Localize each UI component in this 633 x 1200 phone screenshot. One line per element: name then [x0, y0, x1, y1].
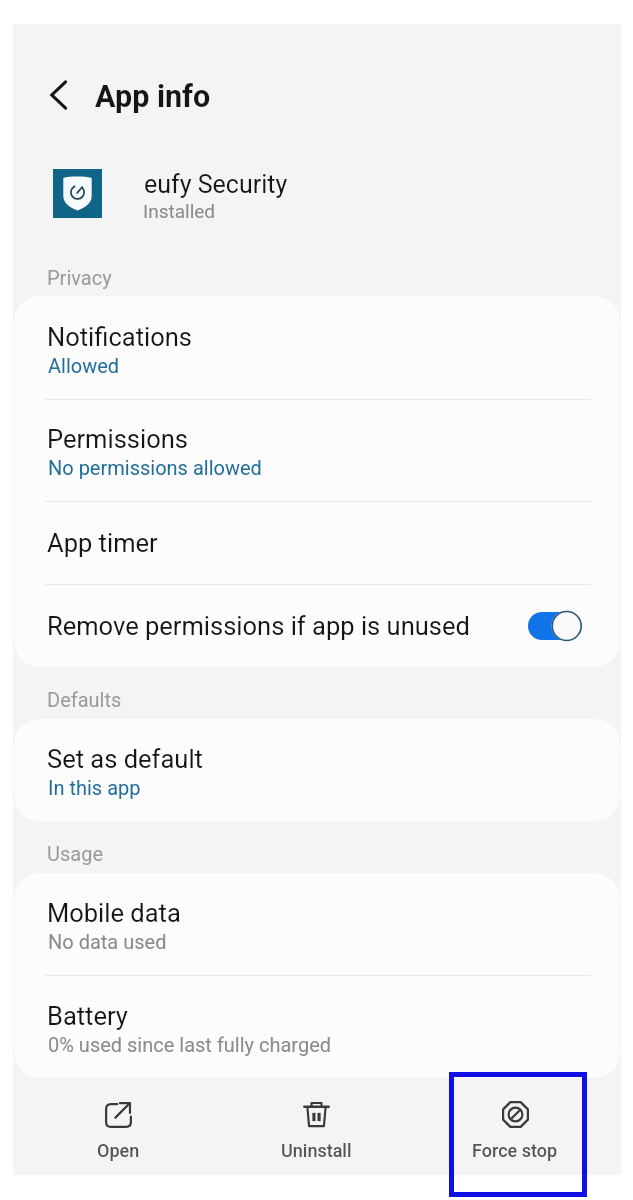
button[interactable]: Back [31, 66, 87, 122]
staticText: No data used [48, 930, 167, 953]
staticText: Installed [143, 200, 216, 222]
staticText: App info [95, 79, 211, 115]
staticText: Remove permissions if app is unused [47, 611, 470, 641]
button[interactable]: Battery [14, 975, 620, 1078]
staticText: Open [97, 1140, 140, 1161]
button[interactable]: Force stop [416, 1078, 614, 1175]
button[interactable]: Mobile data [14, 873, 620, 975]
button[interactable]: Remove permissions if app is unused [14, 584, 620, 667]
staticText: Permissions [47, 424, 188, 454]
staticText: Uninstall [281, 1140, 352, 1161]
staticText: Usage [47, 842, 104, 865]
staticText: Allowed [48, 354, 120, 377]
staticText: Set as default [47, 744, 203, 774]
staticText: 0% used since last fully charged [48, 1033, 332, 1056]
button[interactable]: Set as default [14, 719, 620, 821]
staticText: Battery [47, 1001, 128, 1031]
staticText: Mobile data [47, 898, 181, 928]
staticText: Privacy [47, 266, 112, 289]
button[interactable]: Uninstall [217, 1078, 415, 1175]
button[interactable]: Open [19, 1078, 217, 1175]
staticText: Notifications [47, 322, 192, 352]
staticText: No permissions allowed [48, 456, 262, 479]
staticText: App timer [47, 528, 158, 558]
button[interactable]: Permissions [14, 399, 620, 501]
button[interactable]: Notifications [14, 296, 620, 399]
staticText: eufy Security [144, 170, 288, 199]
staticText: Force stop [472, 1140, 558, 1161]
staticText: Defaults [47, 688, 122, 711]
staticText: In this app [48, 776, 141, 799]
button[interactable]: App timer [14, 501, 620, 584]
